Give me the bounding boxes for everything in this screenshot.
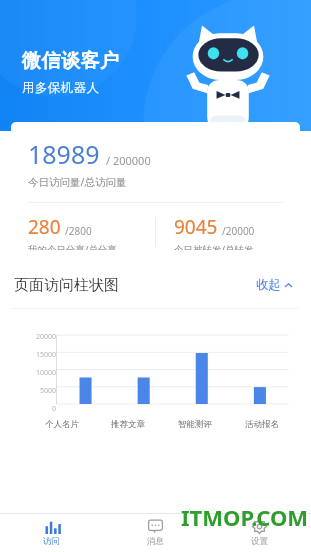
staticText: 今日被转发/总转发 — [174, 243, 254, 250]
staticText: 15000 — [36, 350, 57, 360]
button[interactable]: 访问 — [0, 514, 103, 552]
staticText: 用多保机器人 — [22, 80, 100, 96]
staticText: ITMOP.COM — [181, 502, 309, 532]
staticText: /20000 — [222, 224, 255, 238]
staticText: 消息 — [147, 536, 164, 547]
staticText: /2800 — [65, 224, 92, 238]
staticText: 个人名片 — [45, 419, 79, 430]
staticText: 收起 — [256, 277, 281, 293]
staticText: 5000 — [40, 386, 57, 396]
staticText: 页面访问柱状图 — [14, 276, 119, 295]
staticText: 280 — [28, 214, 61, 240]
staticText: 访问 — [43, 536, 60, 547]
staticText: 10000 — [36, 368, 57, 378]
staticText: 活动报名 — [245, 419, 279, 430]
staticText: 0 — [52, 404, 57, 414]
staticText: 智能测评 — [178, 419, 212, 430]
staticText: 微信谈客户 — [22, 49, 120, 73]
staticText: 18989 — [28, 137, 100, 171]
button[interactable]: 消息 — [103, 514, 207, 552]
staticText: 我的今日分享/总分享 — [28, 243, 118, 250]
button[interactable]: 设置 — [207, 514, 311, 552]
button[interactable]: 收起 — [252, 273, 297, 297]
staticText: 20000 — [36, 332, 57, 342]
staticText: 设置 — [251, 536, 268, 547]
staticText: 9045 — [174, 214, 218, 240]
staticText: 今日访问量/总访问量 — [28, 175, 127, 189]
staticText: 推荐文章 — [111, 419, 145, 430]
staticText: / 200000 — [106, 153, 151, 168]
